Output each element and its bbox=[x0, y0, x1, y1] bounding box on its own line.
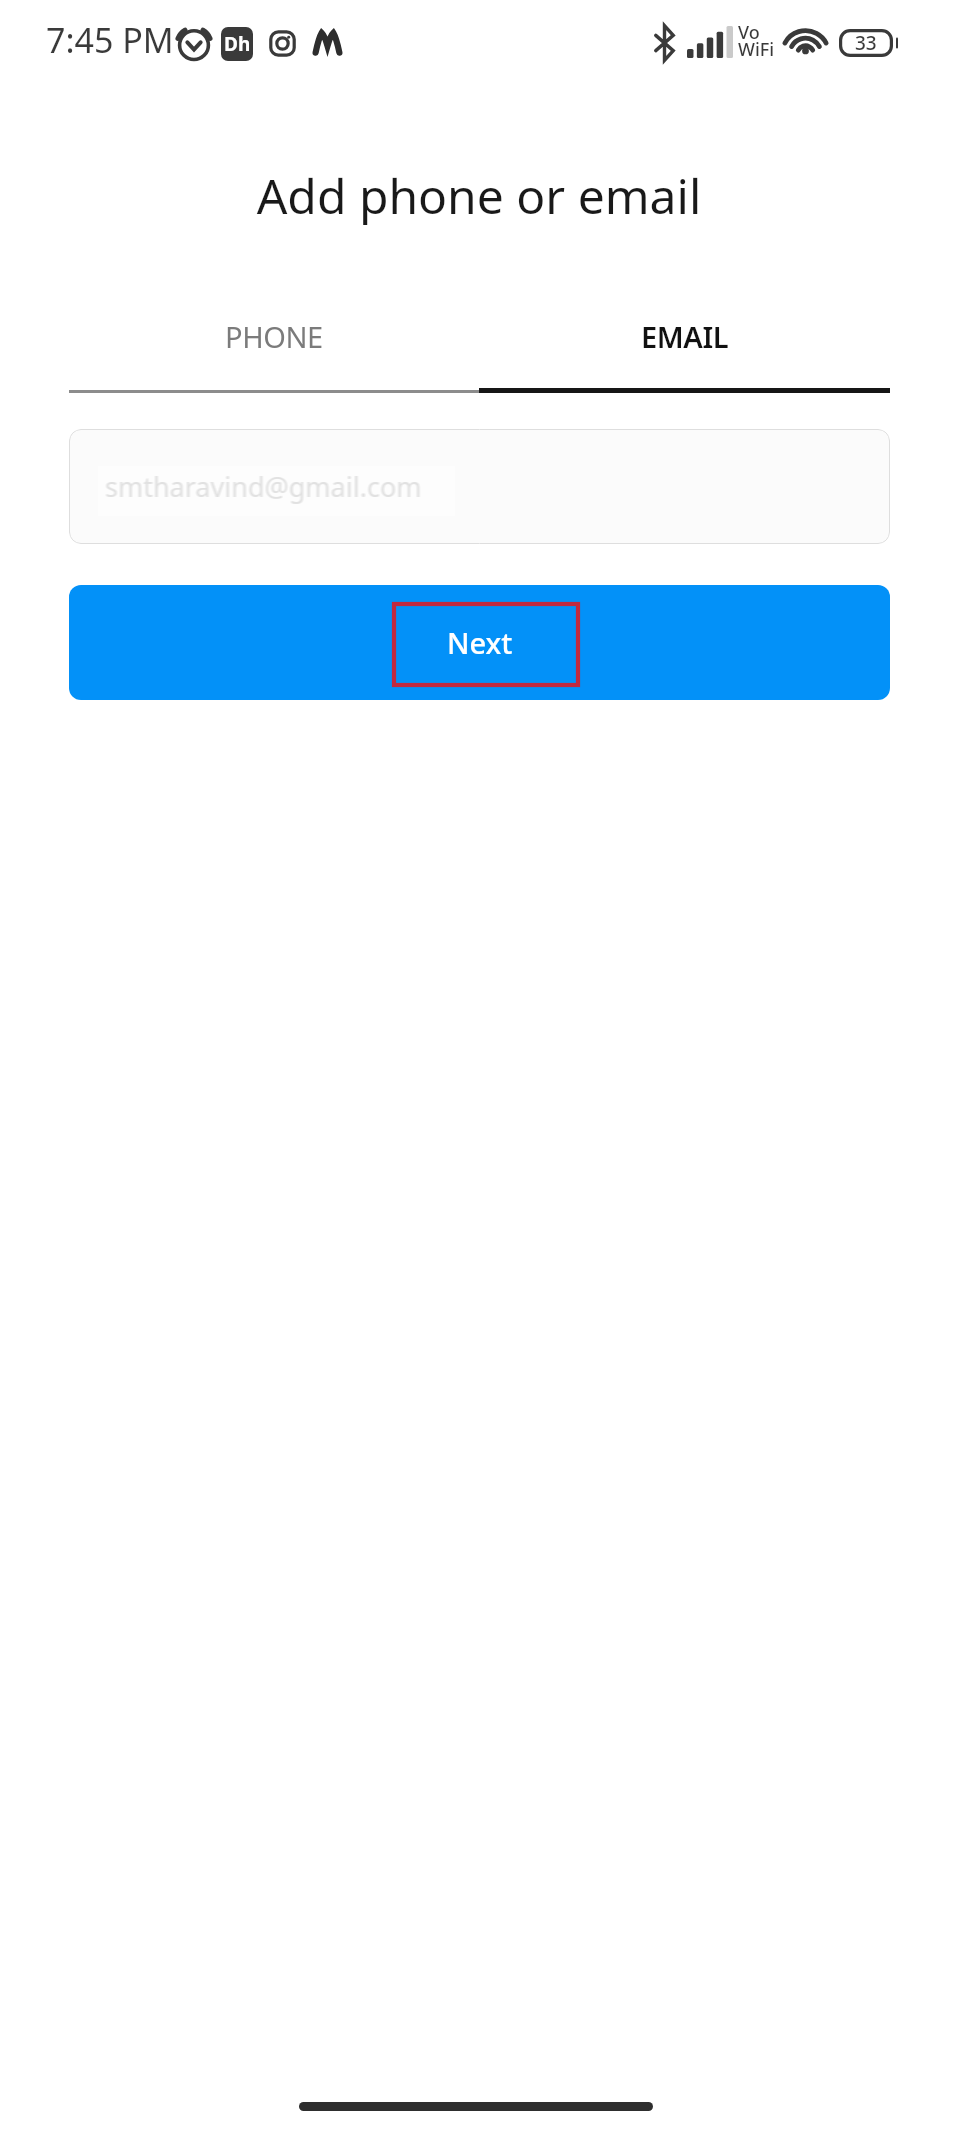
staticText: smtharavind@gmail.com bbox=[106, 468, 423, 505]
staticText: WiFi bbox=[738, 37, 775, 62]
staticText: EMAIL bbox=[641, 317, 729, 356]
staticText: PHONE bbox=[225, 317, 323, 356]
button[interactable]: EMAIL bbox=[479, 300, 890, 393]
staticText: Add phone or email bbox=[0, 163, 958, 228]
staticText: smtharavind@gmail.com bbox=[104, 468, 421, 505]
other: Next button highlight bbox=[392, 602, 580, 687]
staticText: Vo bbox=[738, 20, 760, 45]
staticText: smtharavind@gmail.com bbox=[105, 468, 422, 505]
button[interactable]: PHONE bbox=[69, 300, 479, 393]
staticText: 33 bbox=[855, 30, 877, 56]
staticText: Next bbox=[447, 623, 513, 662]
staticText: Dh bbox=[224, 31, 251, 57]
staticText: 7:45 PM bbox=[46, 17, 174, 63]
button[interactable]: Email address input field bbox=[69, 429, 890, 544]
button[interactable]: Next bbox=[69, 585, 890, 700]
